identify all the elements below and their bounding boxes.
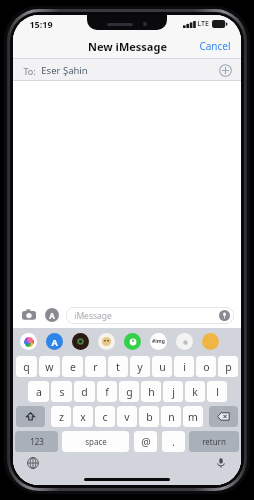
button[interactable]: iMessage: [66, 307, 234, 324]
button[interactable]: p: [218, 356, 238, 377]
staticText: n: [168, 410, 175, 424]
button[interactable]: w: [39, 356, 60, 377]
button[interactable]: c: [95, 406, 115, 427]
staticText: LTE: [197, 19, 209, 29]
button[interactable]: d: [74, 381, 95, 402]
button[interactable]: App 5: [150, 333, 167, 350]
button[interactable]: App 7: [202, 333, 219, 350]
staticText: k: [192, 385, 198, 399]
staticText: i: [183, 360, 186, 374]
button[interactable]: e: [62, 356, 83, 377]
staticText: .: [172, 435, 175, 449]
staticText: x: [80, 410, 86, 424]
button[interactable]: Cancel: [189, 35, 241, 57]
staticText: h: [148, 385, 155, 399]
button[interactable]: o: [196, 356, 216, 377]
staticText: return: [202, 436, 226, 447]
staticText: New iMessage: [88, 39, 167, 54]
button[interactable]: App 4: [124, 333, 141, 350]
staticText: j: [172, 385, 175, 399]
button[interactable]: t: [108, 356, 128, 377]
button[interactable]: h: [141, 381, 161, 402]
staticText: m: [188, 410, 198, 424]
button[interactable]: m: [183, 406, 203, 427]
staticText: w: [45, 360, 54, 374]
button[interactable]: f: [97, 381, 117, 402]
staticText: A: [49, 310, 55, 321]
staticText: g: [126, 385, 133, 399]
button[interactable]: q: [16, 356, 37, 377]
button[interactable]: Delete: [209, 406, 238, 427]
button[interactable]: x: [73, 406, 93, 427]
button[interactable]: Dictation: [213, 455, 229, 471]
staticText: o: [203, 360, 210, 374]
staticText: c: [102, 410, 108, 424]
button[interactable]: r: [85, 356, 106, 377]
button[interactable]: y: [130, 356, 150, 377]
button[interactable]: return: [189, 431, 239, 452]
staticText: l: [216, 385, 219, 399]
button[interactable]: s: [51, 381, 72, 402]
button[interactable]: App 6: [176, 333, 193, 350]
staticText: z: [59, 410, 64, 424]
staticText: a: [36, 385, 42, 399]
staticText: p: [225, 360, 232, 374]
staticText: r: [93, 360, 98, 374]
staticText: d: [81, 385, 88, 399]
staticText: space: [85, 436, 107, 447]
button[interactable]: Dictate: [218, 309, 231, 322]
staticText: #img: [152, 338, 165, 345]
button[interactable]: b: [139, 406, 159, 427]
staticText: y: [137, 360, 143, 374]
button[interactable]: App 0: [20, 333, 37, 350]
button[interactable]: @: [134, 431, 157, 452]
button[interactable]: Camera: [20, 306, 38, 324]
button[interactable]: k: [185, 381, 205, 402]
button[interactable]: App 2: [72, 333, 89, 350]
button[interactable]: App 1: [46, 333, 63, 350]
button[interactable]: Shift: [16, 406, 45, 427]
staticText: f: [105, 385, 109, 399]
staticText: Cancel: [199, 39, 231, 53]
button[interactable]: .: [162, 431, 185, 452]
button[interactable]: 123: [15, 431, 58, 452]
staticText: iMessage: [74, 310, 112, 322]
button[interactable]: a: [28, 381, 49, 402]
button[interactable]: z: [51, 406, 71, 427]
button[interactable]: n: [161, 406, 181, 427]
button[interactable]: Add contact: [215, 60, 235, 80]
button[interactable]: j: [163, 381, 183, 402]
button[interactable]: Switch keyboard: [25, 455, 41, 471]
staticText: To:: [23, 65, 36, 77]
button[interactable]: v: [117, 406, 137, 427]
button[interactable]: l: [207, 381, 227, 402]
staticText: q: [23, 360, 30, 374]
staticText: t: [116, 360, 120, 374]
button[interactable]: space: [62, 431, 129, 452]
button[interactable]: i: [174, 356, 194, 377]
staticText: Eser Şahin: [41, 64, 88, 77]
staticText: s: [59, 385, 65, 399]
staticText: v: [124, 410, 130, 424]
staticText: 123: [30, 436, 44, 447]
staticText: e: [70, 360, 76, 374]
button[interactable]: u: [152, 356, 172, 377]
button[interactable]: App Store: [43, 306, 61, 324]
staticText: @: [141, 435, 151, 449]
staticText: A: [51, 336, 58, 348]
staticText: b: [146, 410, 153, 424]
button[interactable]: App 3: [98, 333, 115, 350]
staticText: 15:19: [29, 18, 53, 30]
button[interactable]: g: [119, 381, 139, 402]
staticText: u: [159, 360, 166, 374]
